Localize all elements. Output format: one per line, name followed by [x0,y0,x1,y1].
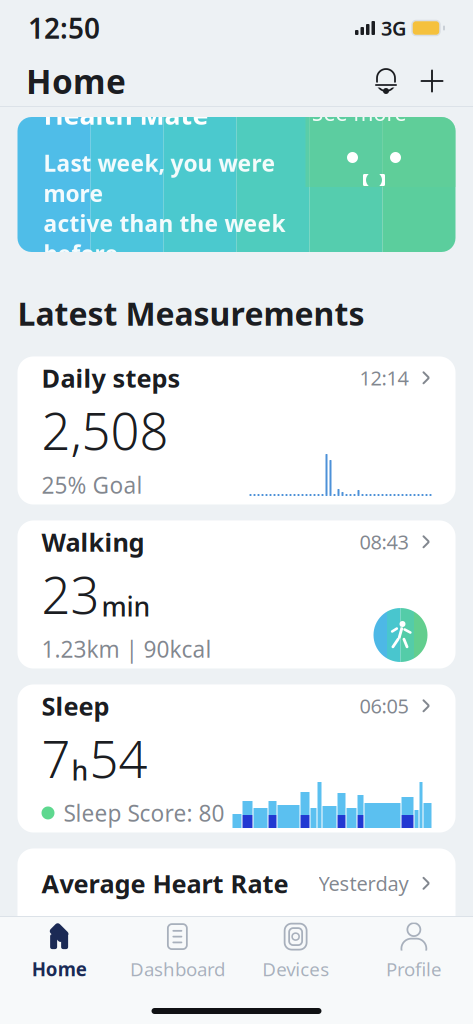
staticText: 86 [41,902,99,969]
staticText: Latest Measurements [17,292,364,334]
staticText: 12:50 [28,9,100,47]
staticText: bpm [101,930,160,965]
staticText: 12:14 [359,364,408,391]
staticText: Yesterday [318,870,408,897]
staticText: 54 [89,725,147,792]
button[interactable]: Home [0,923,118,981]
button[interactable]: Profile [355,923,473,981]
staticText: Health Mate [43,97,208,132]
button[interactable]: Daily steps [17,356,455,504]
button[interactable]: Average Heart Rate [17,848,455,996]
button[interactable]: Add measurement [409,58,455,104]
button[interactable]: Dashboard [118,923,236,981]
button[interactable]: Sleep [17,684,455,832]
button[interactable]: Notifications [363,58,409,104]
staticText: Sleep Score: 80 [63,798,224,828]
staticText: 06:05 [359,692,408,719]
staticText: Home [26,59,126,103]
staticText: 7 [41,725,70,792]
staticText: Dashboard [130,957,225,981]
button[interactable]: Health Mate [17,117,455,252]
staticText: Last week, you were more active than the… [43,148,285,268]
staticText: h [71,752,88,788]
staticText: 23 [41,561,99,628]
staticText: Home [32,957,87,981]
staticText: Average Heart Rate [41,866,288,900]
staticText: 1.23km | 90kcal [41,634,211,664]
button[interactable]: Walking [17,520,455,668]
staticText: Daily steps [41,361,180,395]
staticText: min [101,588,150,624]
button[interactable]: Devices [236,923,355,981]
staticText: Sleep [41,689,109,723]
staticText: 08:43 [359,528,408,555]
staticText: 3G [381,15,407,41]
staticText: Devices [262,957,329,981]
staticText: Walking [41,525,144,559]
staticText: 25% Goal [41,470,142,500]
staticText: 2,508 [41,397,168,464]
staticText: See more [311,99,406,127]
staticText: Profile [386,957,442,981]
